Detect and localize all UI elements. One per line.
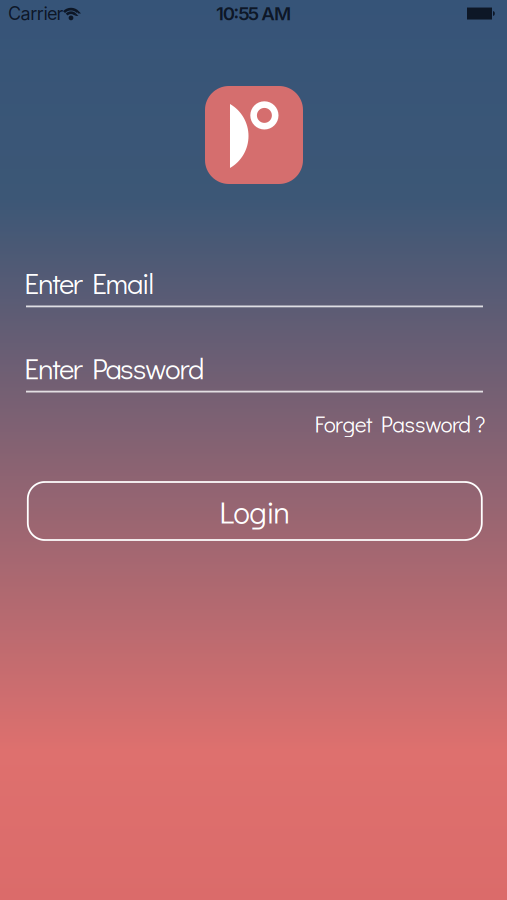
button[interactable]: Login bbox=[28, 482, 482, 540]
staticText: Login bbox=[219, 491, 290, 532]
staticText: 10:55 AM bbox=[216, 2, 291, 25]
button[interactable]: Forget Password ? bbox=[1, 409, 507, 438]
staticText: Enter Password bbox=[24, 348, 204, 387]
staticText: Carrier bbox=[8, 3, 64, 24]
button[interactable]: Enter Password bbox=[26, 352, 483, 398]
staticText: Forget Password ? bbox=[314, 409, 485, 438]
staticText: Enter Email bbox=[24, 263, 154, 302]
button[interactable]: Enter Email bbox=[26, 267, 483, 313]
